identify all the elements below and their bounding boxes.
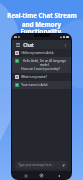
staticText: and Memory Functionality. [4,20,79,36]
button[interactable]: Send [61,163,65,167]
button[interactable]: Back [55,172,62,179]
button[interactable]: Hello Ankit, I'm an AI language model. [12,57,71,73]
staticText: Chat [23,42,34,48]
staticText: Hello my name is Ankit [21,51,54,55]
button[interactable]: Menu [15,42,21,48]
staticText: Type your message here... [18,163,54,167]
staticText: Your name is Ankit [21,83,48,87]
staticText: What is my name? [21,75,47,79]
button[interactable]: Your name is Ankit [12,81,71,89]
button[interactable]: More options [62,42,68,48]
button[interactable]: Hello my name is Ankit [12,49,71,57]
button[interactable]: Type your message here... [15,161,68,169]
button[interactable]: What is my name? [12,73,71,81]
staticText: How can I assist you today? [21,67,60,71]
button[interactable]: Recents [22,172,29,179]
button[interactable]: Home [38,172,45,179]
staticText: Hello Ankit, I'm an AI language model. [21,59,68,67]
staticText: Real-time Chat Stream [7,11,77,19]
